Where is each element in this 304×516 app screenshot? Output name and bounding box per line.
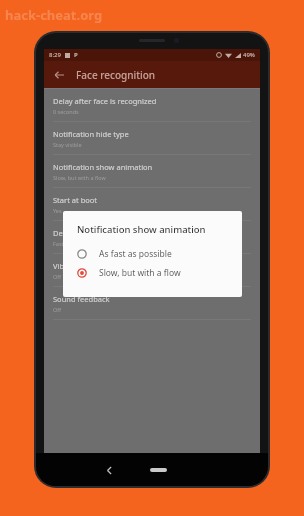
staticText: hack-cheat.org — [5, 6, 103, 24]
button[interactable]: Navigate up — [50, 66, 68, 84]
button[interactable]: Home — [146, 465, 170, 475]
button[interactable]: Vibration — [44, 254, 260, 287]
staticText: Stay visible — [53, 141, 82, 148]
staticText: Notification show animation — [53, 162, 153, 172]
staticText: Notification hide type — [53, 129, 129, 139]
button[interactable]: Delay after face is recognized — [44, 89, 260, 122]
staticText: Off — [53, 306, 62, 313]
button[interactable]: Sound feedback — [44, 287, 260, 320]
button[interactable]: As fast as possible — [63, 244, 242, 263]
button[interactable]: Start at boot — [44, 188, 260, 221]
staticText: Sound feedback — [53, 294, 110, 304]
staticText: Slow, but with a flow — [53, 174, 106, 181]
button[interactable]: Notification show animation — [44, 155, 260, 188]
staticText: Notification show animation — [77, 223, 206, 236]
staticText: 49% — [243, 51, 255, 59]
staticText: Detection mode — [53, 228, 110, 238]
staticText: Face recognition — [76, 68, 156, 82]
staticText: P — [74, 51, 78, 59]
button[interactable]: Detection mode — [44, 221, 260, 254]
staticText: Slow, but with a flow — [99, 267, 181, 279]
staticText: Off — [53, 273, 62, 280]
staticText: Fast — [53, 240, 64, 247]
button[interactable]: Back — [98, 459, 120, 481]
staticText: As fast as possible — [99, 248, 172, 260]
button[interactable]: Slow, but with a flow — [63, 263, 242, 282]
button[interactable]: Notification hide type — [44, 122, 260, 155]
staticText: 0 seconds — [53, 108, 79, 115]
staticText: Start at boot — [53, 195, 98, 205]
staticText: Vibration — [53, 261, 86, 271]
staticText: 8:29 — [49, 51, 61, 59]
staticText: Delay after face is recognized — [53, 96, 157, 106]
staticText: Yes — [53, 207, 62, 214]
